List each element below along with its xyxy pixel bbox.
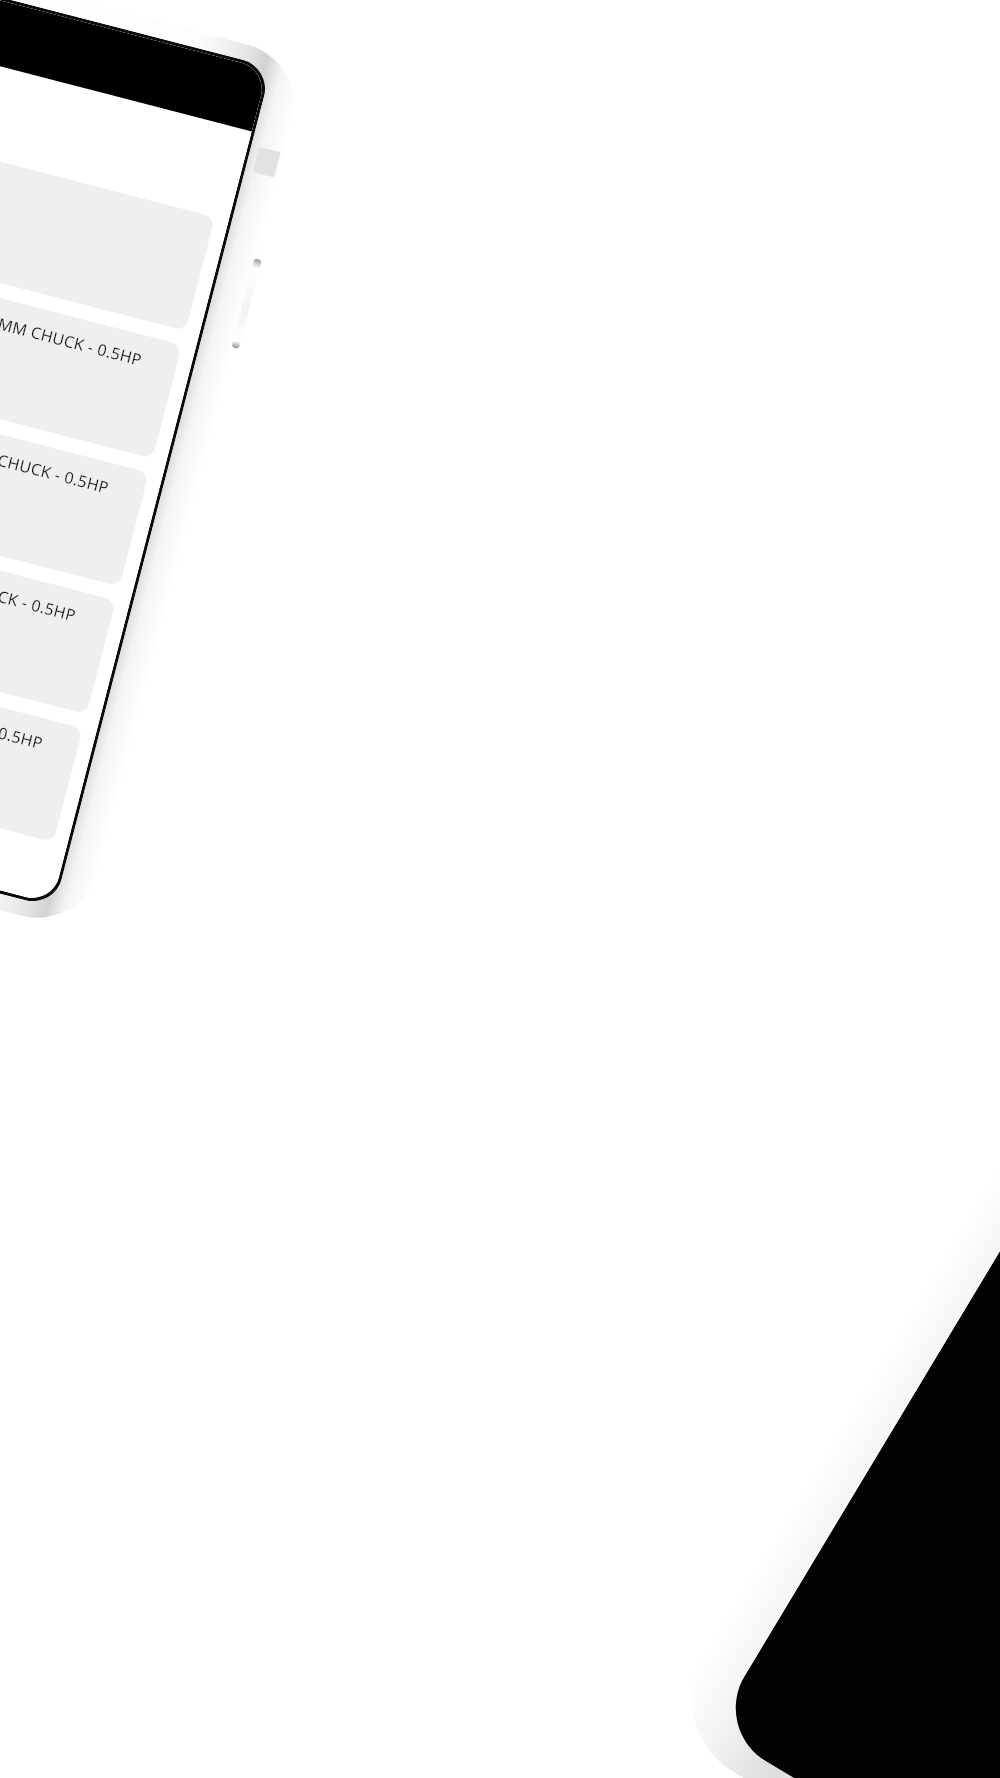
button[interactable]: CORDLESS DRILL 13MM CHUCK - 0.5HP [0, 512, 116, 715]
staticText: CORDLESS DRILL 13MM CHUCK - 0.5HP [0, 530, 79, 626]
button[interactable]: CORDLESS DRILL 13MM CHUCK - 0.5HP [0, 640, 83, 842]
button[interactable] [0, 129, 215, 331]
staticText: CORDLESS DRILL 13MM CHUCK - 0.5HP [0, 274, 145, 371]
button[interactable]: CORDLESS DRILL 13MM CHUCK - 0.5HP [0, 384, 149, 587]
button[interactable]: CORDLESS DRILL 13MM CHUCK - 0.5HP [0, 257, 182, 459]
staticText: CORDLESS DRILL 13MM CHUCK - 0.5HP [0, 402, 112, 499]
other: Power button [231, 258, 262, 349]
staticText: CORDLESS DRILL 13MM CHUCK - 0.5HP [0, 658, 46, 754]
